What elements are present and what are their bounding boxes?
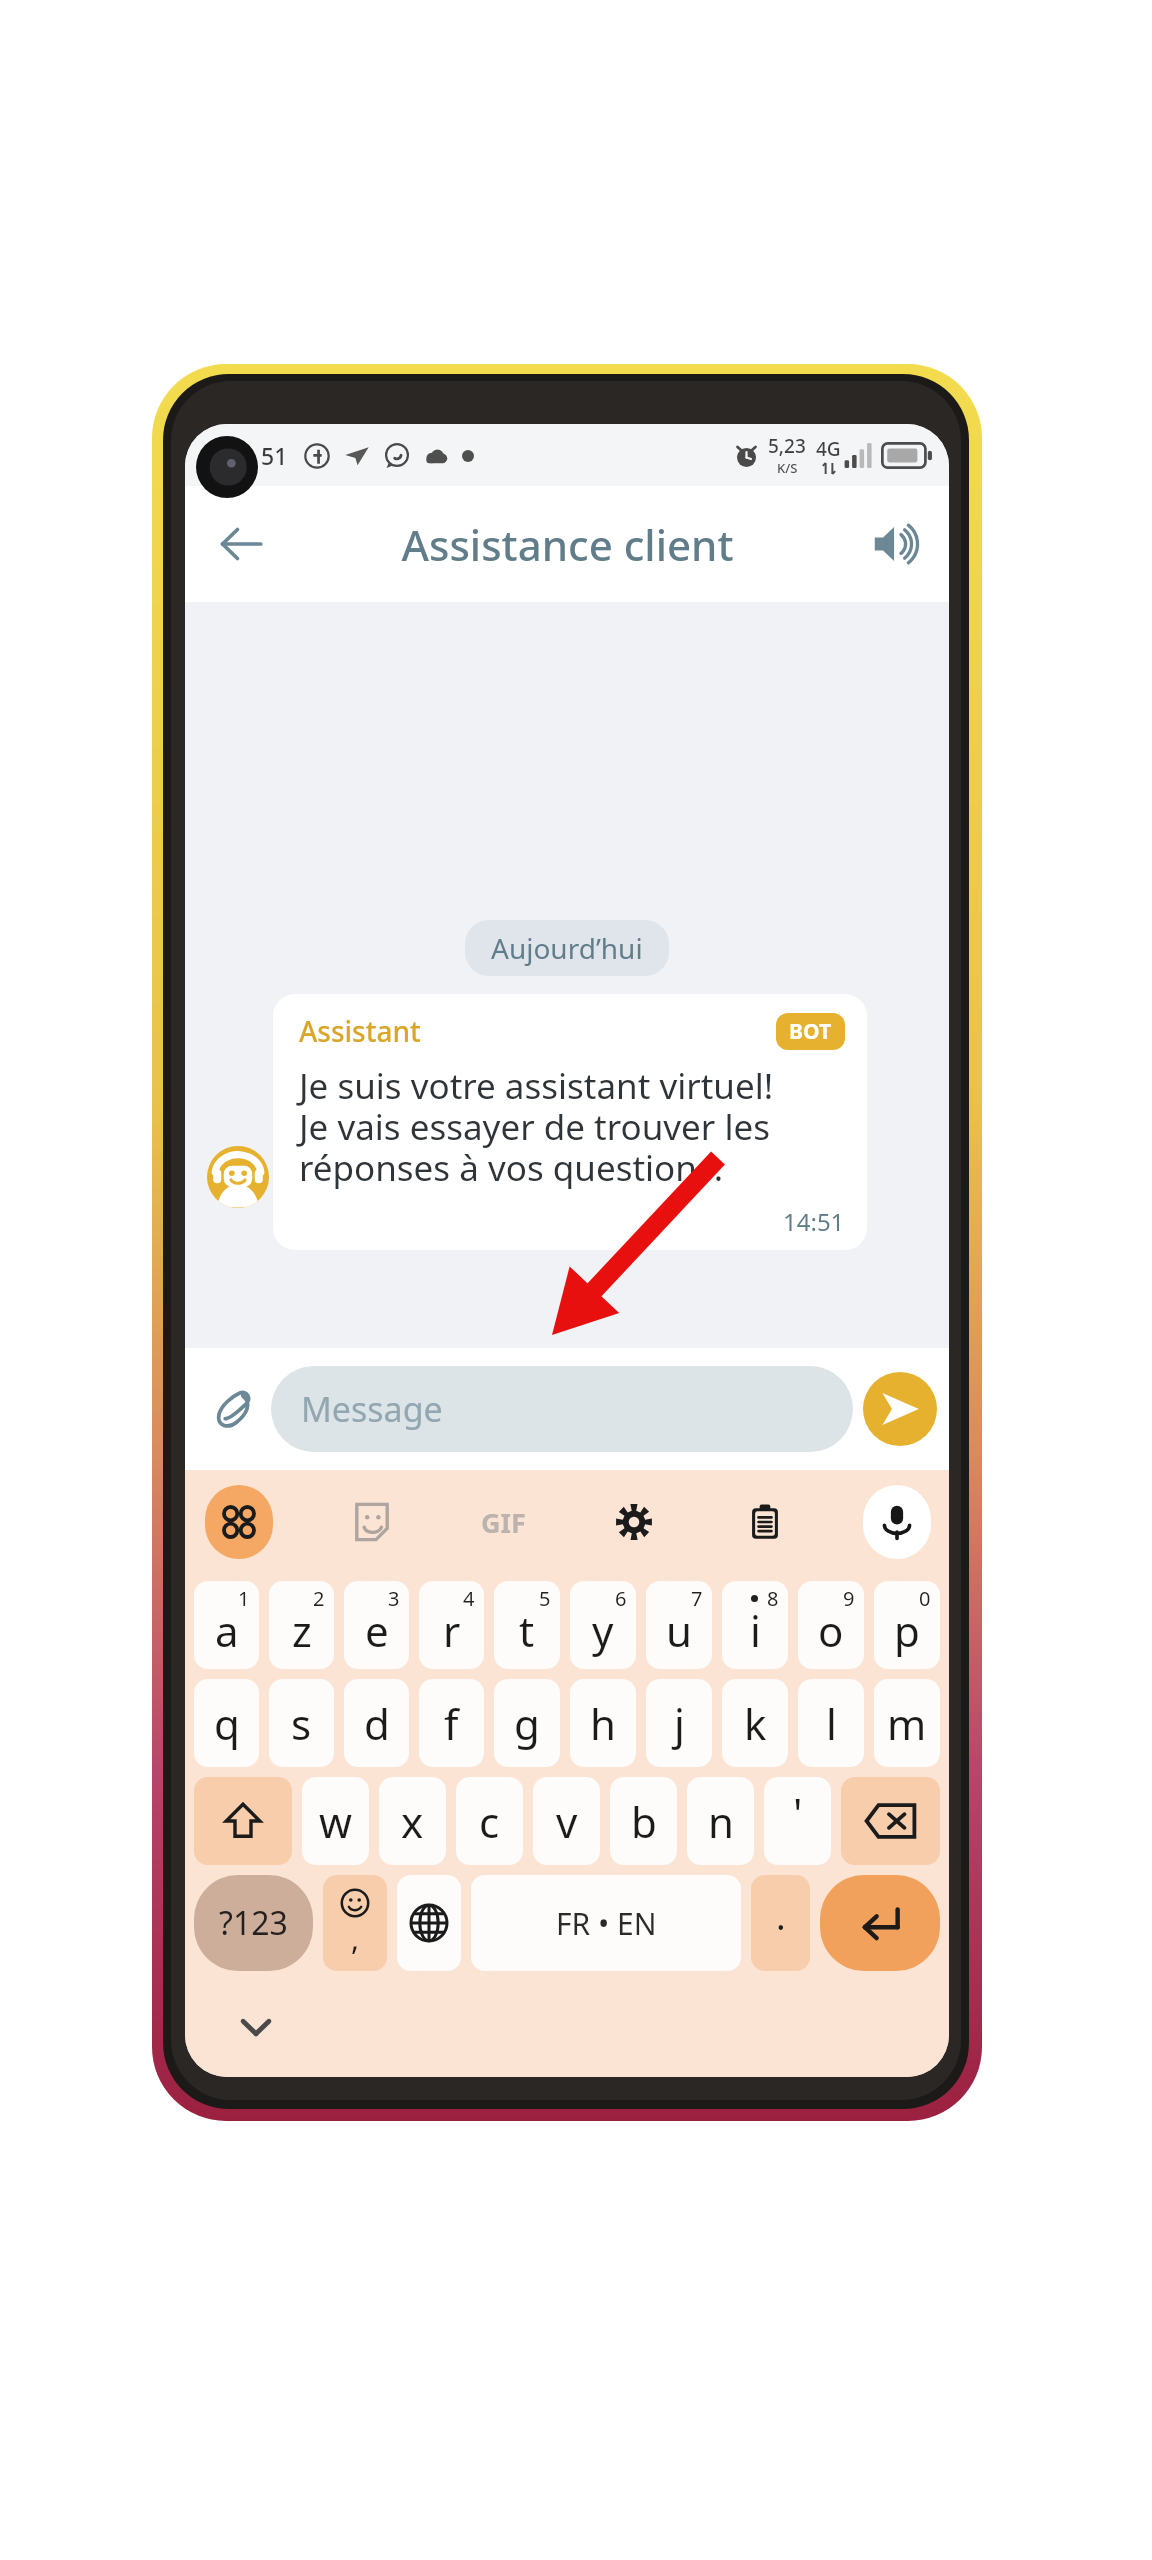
button[interactable]: d [344, 1679, 409, 1767]
button[interactable]: j [646, 1679, 712, 1767]
staticText: y [592, 1602, 614, 1659]
staticText: Assistant [299, 1012, 421, 1050]
staticText: n [708, 1793, 734, 1850]
staticText: u [666, 1602, 692, 1659]
staticText: x [401, 1793, 424, 1850]
button[interactable]: Aujourd’hui [465, 920, 669, 976]
button[interactable]: l [798, 1679, 864, 1767]
staticText: o [818, 1602, 844, 1659]
staticText: 8 [767, 1585, 779, 1612]
button[interactable]: s [269, 1679, 334, 1767]
button[interactable]: n [687, 1777, 754, 1865]
staticText: , [351, 1918, 360, 1959]
staticText: e [365, 1602, 389, 1659]
button[interactable]: m [874, 1679, 940, 1767]
button[interactable]: h [570, 1679, 636, 1767]
staticText: h [590, 1695, 616, 1752]
button[interactable]: Attach file [197, 1372, 271, 1446]
button[interactable]: 9 [798, 1581, 864, 1669]
staticText: b [631, 1793, 657, 1850]
staticText: K/S [777, 459, 798, 477]
staticText: . [776, 1892, 786, 1941]
button[interactable]: Message [271, 1366, 853, 1452]
button[interactable]: Assistant avatar [207, 1146, 269, 1208]
staticText: 4G [816, 436, 841, 462]
button[interactable]: 8 [722, 1581, 788, 1669]
staticText: d [364, 1695, 390, 1752]
staticText: ' [793, 1784, 803, 1841]
button[interactable]: x [379, 1777, 446, 1865]
button[interactable]: b [610, 1777, 677, 1865]
staticText: f [444, 1695, 459, 1752]
button[interactable]: 0 [874, 1581, 940, 1669]
button[interactable]: Hide keyboard [225, 1996, 287, 2058]
button[interactable]: Stickers [339, 1489, 405, 1555]
button[interactable]: . [751, 1875, 810, 1971]
staticText: j [674, 1695, 685, 1752]
button[interactable]: 1 [194, 1581, 259, 1669]
button[interactable]: Clipboard [732, 1489, 798, 1555]
staticText: GIF [481, 1504, 526, 1541]
button[interactable]: g [494, 1679, 560, 1767]
button[interactable]: 4 [419, 1581, 484, 1669]
button[interactable]: v [533, 1777, 600, 1865]
button[interactable]: Voice input [863, 1485, 931, 1559]
staticText: v [556, 1793, 578, 1850]
staticText: k [744, 1695, 767, 1752]
button[interactable]: GIF [470, 1489, 536, 1555]
button[interactable]: f [419, 1679, 484, 1767]
staticText: 9 [843, 1585, 855, 1612]
button[interactable]: Sound [857, 506, 933, 582]
button[interactable]: Back [203, 506, 279, 582]
staticText: 5 [539, 1585, 551, 1612]
button[interactable]: Assistant [273, 994, 867, 1250]
staticText: m [887, 1695, 927, 1752]
staticText: w [319, 1793, 353, 1850]
staticText: a [215, 1602, 239, 1659]
staticText: FR • EN [556, 1903, 657, 1944]
button[interactable]: Settings [601, 1489, 667, 1555]
staticText: i [750, 1602, 761, 1659]
button[interactable]: 5 [494, 1581, 560, 1669]
staticText: 2 [313, 1585, 325, 1612]
staticText: s [291, 1695, 312, 1752]
staticText: z [292, 1602, 312, 1659]
staticText: 4 [463, 1585, 475, 1612]
staticText: l [826, 1695, 837, 1752]
button[interactable]: Keyboard apps [205, 1485, 273, 1559]
button[interactable]: ' [764, 1777, 831, 1865]
button[interactable]: c [456, 1777, 523, 1865]
staticText: p [894, 1602, 920, 1659]
button[interactable]: 2 [269, 1581, 334, 1669]
staticText: t [519, 1602, 535, 1659]
button[interactable]: w [302, 1777, 369, 1865]
button[interactable]: k [722, 1679, 788, 1767]
staticText: 0 [919, 1585, 931, 1612]
button[interactable]: Enter [820, 1875, 940, 1971]
button[interactable]: Shift [194, 1777, 292, 1865]
button[interactable]: 6 [570, 1581, 636, 1669]
staticText: BOT [789, 1017, 832, 1046]
button[interactable]: Change language [397, 1875, 461, 1971]
staticText: Assistance client [401, 516, 734, 573]
staticText: g [514, 1695, 540, 1752]
button[interactable]: 3 [344, 1581, 409, 1669]
button[interactable]: 7 [646, 1581, 712, 1669]
button[interactable]: FR • EN [471, 1875, 741, 1971]
staticText: q [214, 1695, 240, 1752]
staticText: 6 [615, 1585, 627, 1612]
button[interactable]: q [194, 1679, 259, 1767]
button[interactable]: Send [863, 1372, 937, 1446]
staticText: ?123 [219, 1901, 288, 1945]
staticText: Je suis votre assistant virtuel! Je vais… [299, 1062, 774, 1191]
button[interactable]: Emoji [323, 1875, 387, 1971]
staticText: Aujourd’hui [491, 929, 643, 967]
button[interactable]: Backspace [841, 1777, 940, 1865]
staticText: 1 [238, 1585, 250, 1612]
staticText: c [479, 1793, 500, 1850]
staticText: r [443, 1602, 461, 1659]
staticText: Message [301, 1386, 443, 1432]
staticText: 14:51 [783, 1205, 845, 1238]
button[interactable]: ?123 [194, 1875, 313, 1971]
staticText: 51 [261, 440, 288, 471]
